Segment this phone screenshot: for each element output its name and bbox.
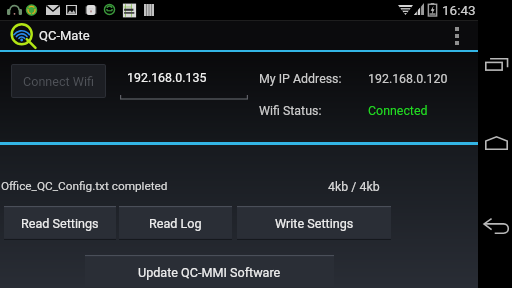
button[interactable]: More options <box>444 21 472 50</box>
staticText: My IP Address: <box>259 71 342 86</box>
staticText: 16:43 <box>442 2 476 18</box>
staticText: Update QC-MMI Software <box>138 265 281 280</box>
staticText: 192.168.0.135 <box>127 70 207 85</box>
staticText: QC-Mate <box>39 28 90 43</box>
staticText: Connected <box>368 103 428 118</box>
staticText: 4kb / 4kb <box>328 179 380 194</box>
staticText: Write Settings <box>275 216 354 231</box>
staticText: Wifi Status: <box>259 103 322 118</box>
button[interactable]: Back <box>478 205 512 247</box>
button[interactable]: Update QC-MMI Software <box>85 255 334 288</box>
staticText: Read Settings <box>21 216 99 231</box>
button[interactable]: Home <box>478 122 512 164</box>
button[interactable]: Connect Wifi <box>11 64 106 98</box>
staticText: Read Log <box>149 216 202 231</box>
staticText: 192.168.0.120 <box>368 71 448 86</box>
button[interactable]: Read Log <box>119 206 232 240</box>
staticText: Office_QC_Config.txt completed <box>1 179 168 193</box>
button[interactable]: Recent apps <box>478 42 512 84</box>
button[interactable]: Write Settings <box>237 206 391 240</box>
staticText: Connect Wifi <box>23 74 95 89</box>
button[interactable]: Read Settings <box>4 206 116 240</box>
